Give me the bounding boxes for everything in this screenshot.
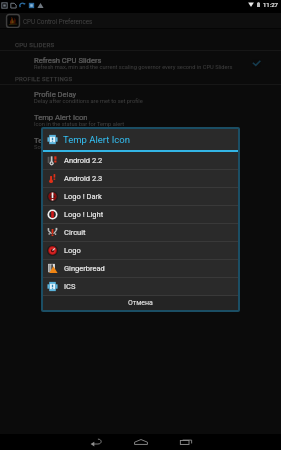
button[interactable]: Back: [73, 434, 118, 448]
staticText: Icon in the status bar for Temp alert: [34, 121, 125, 128]
staticText: Sound in the status bar for Temp alert: [34, 144, 130, 151]
button[interactable]: Refresh CPU Sliders: [0, 52, 281, 75]
staticText: PROFILE SETTINGS: [15, 75, 73, 82]
button[interactable]: Gingerbread: [43, 260, 238, 277]
button[interactable]: Profile Delay: [0, 86, 281, 109]
staticText: Отмена: [128, 299, 153, 307]
staticText: Temp Alert Icon: [34, 113, 88, 122]
button[interactable]: Android 2.2: [43, 152, 238, 169]
button[interactable]: Logo ! Light: [43, 206, 238, 223]
staticText: Android 2.2: [64, 156, 103, 165]
staticText: Logo ! Light: [64, 210, 104, 219]
button[interactable]: Temp Alert Icon: [0, 109, 281, 132]
button[interactable]: Logo: [43, 242, 238, 259]
staticText: Logo ! Dark: [64, 192, 102, 201]
button[interactable]: Circuit: [43, 224, 238, 241]
staticText: ICS: [64, 282, 76, 291]
staticText: CPU SLIDERS: [15, 41, 55, 48]
button[interactable]: ICS: [43, 278, 238, 295]
staticText: Android 2.3: [64, 174, 103, 183]
staticText: Delay after conditions are met to set pr…: [34, 98, 143, 105]
staticText: Gingerbread: [64, 264, 105, 273]
staticText: Logo: [64, 246, 81, 255]
staticText: Circuit: [64, 228, 86, 237]
button[interactable]: Home: [118, 434, 163, 448]
button[interactable]: Recents: [163, 434, 208, 448]
staticText: 11:27: [263, 1, 278, 8]
button[interactable]: Отмена: [43, 296, 238, 310]
staticText: Temp Alert Icon: [63, 134, 130, 145]
staticText: Profile Delay: [34, 90, 77, 99]
staticText: Temp Alert Sound: [34, 136, 95, 145]
button[interactable]: Logo ! Dark: [43, 188, 238, 205]
staticText: Refresh CPU Sliders: [34, 56, 102, 65]
staticText: CPU Control Preferences: [23, 18, 93, 25]
button[interactable]: Temp Alert Sound: [0, 132, 281, 155]
staticText: Refresh max, min and the current scaling…: [34, 64, 233, 71]
button[interactable]: Android 2.3: [43, 170, 238, 187]
